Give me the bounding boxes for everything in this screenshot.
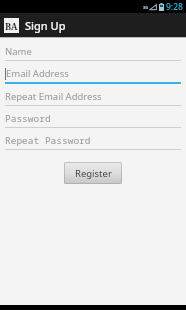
staticText: 9:28 — [166, 1, 183, 13]
staticText: Name — [5, 45, 32, 58]
staticText: BA — [5, 20, 18, 32]
button[interactable]: Repeat Email Address — [5, 88, 181, 110]
staticText: Repeat Email Address — [5, 90, 102, 103]
staticText: 3G — [143, 5, 149, 10]
button[interactable]: Password — [5, 110, 181, 132]
button[interactable]: Name — [5, 43, 181, 65]
button[interactable]: Register — [64, 162, 122, 184]
staticText: Repeat Password — [5, 134, 91, 147]
button[interactable]: Email Address — [5, 65, 181, 88]
button[interactable]: Repeat Password — [5, 132, 181, 154]
staticText: Register — [75, 167, 112, 180]
staticText: Password — [5, 112, 51, 125]
button[interactable]: App logo, navigate up — [4, 18, 19, 33]
staticText: Email Address — [6, 67, 69, 80]
staticText: Sign Up — [25, 18, 66, 33]
